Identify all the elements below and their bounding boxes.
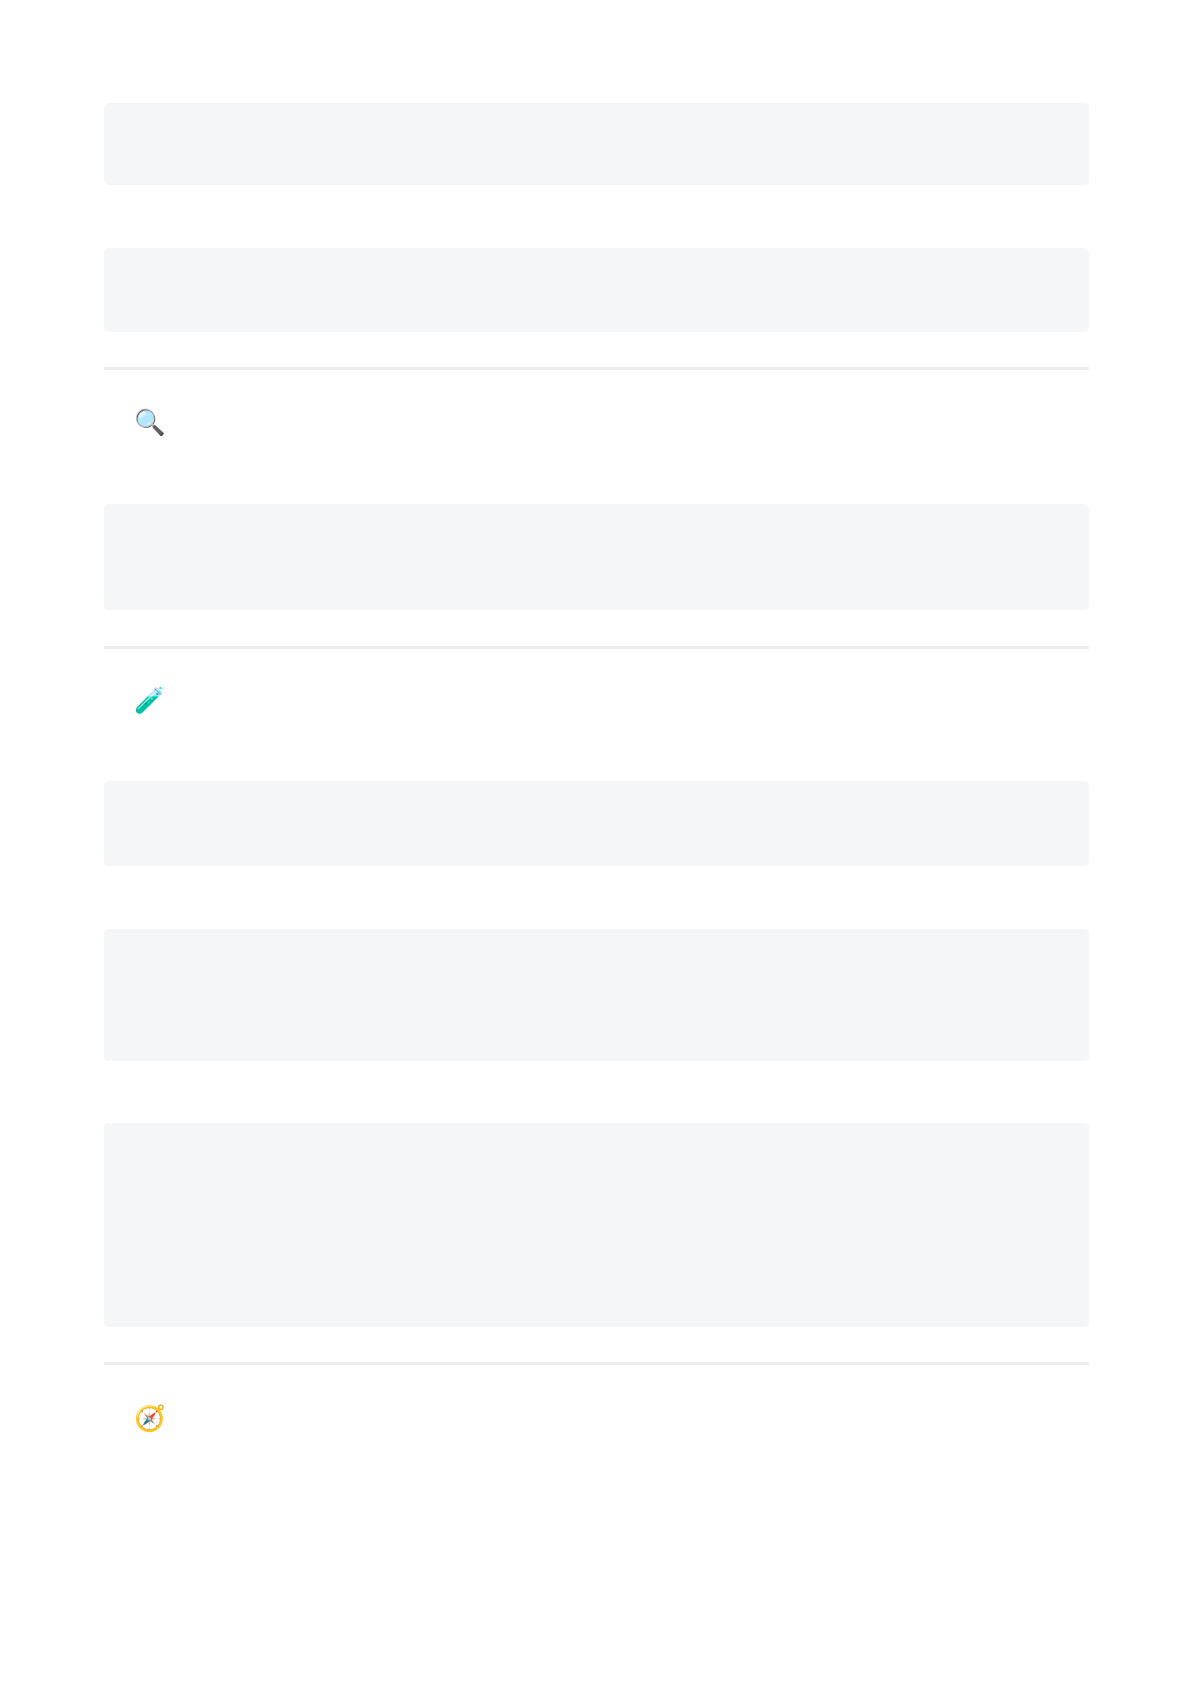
button[interactable]: Navigation section: [104, 1404, 1089, 1432]
staticText: 🧭: [134, 1403, 166, 1433]
button[interactable]: Experiments section: [104, 686, 1089, 714]
button[interactable]: Search section: [104, 408, 1089, 436]
staticText: 🔍: [134, 407, 166, 437]
staticText: 🧪: [134, 685, 166, 715]
